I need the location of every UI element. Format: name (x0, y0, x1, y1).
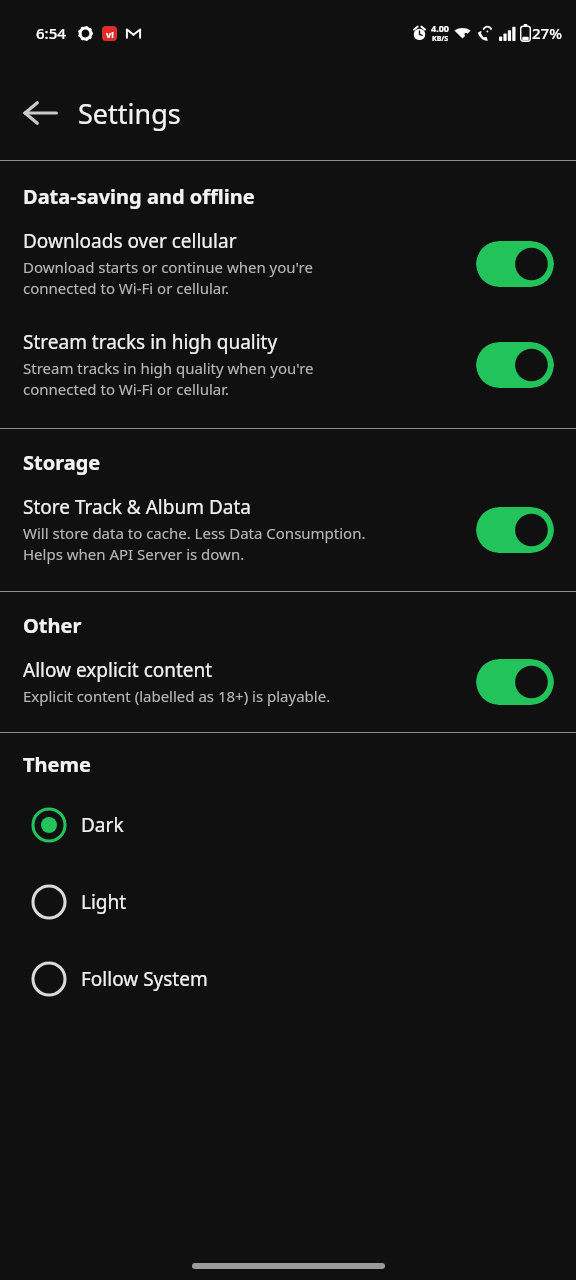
button[interactable]: Toggle (476, 507, 554, 553)
button[interactable]: Toggle (476, 659, 554, 705)
button[interactable]: Toggle (476, 342, 554, 388)
staticText: Other (23, 612, 82, 639)
staticText: Storage (23, 449, 101, 476)
staticText: 4.00 (431, 22, 449, 34)
button[interactable]: Dark (0, 786, 576, 863)
button[interactable]: Back (12, 85, 68, 141)
staticText: Download starts or continue when you're … (23, 257, 313, 299)
staticText: v! (106, 28, 114, 40)
staticText: 6:54 (36, 23, 66, 43)
staticText: Store Track & Album Data (23, 494, 251, 520)
button[interactable]: Follow System (0, 940, 576, 1017)
staticText: Data-saving and offline (23, 183, 255, 210)
button[interactable]: Stream tracks in high quality (0, 325, 576, 404)
staticText: KB/S (432, 34, 449, 44)
staticText: Dark (81, 812, 124, 838)
button[interactable]: Toggle (476, 241, 554, 287)
staticText: Light (81, 889, 127, 915)
staticText: Follow System (81, 966, 208, 992)
staticText: Settings (78, 95, 181, 132)
staticText: Stream tracks in high quality when you'r… (23, 358, 314, 400)
button[interactable]: Allow explicit content (0, 653, 576, 710)
staticText: Will store data to cache. Less Data Cons… (23, 523, 366, 565)
staticText: 27% (532, 23, 562, 43)
button[interactable]: Downloads over cellular (0, 224, 576, 303)
staticText: Downloads over cellular (23, 228, 237, 254)
staticText: Stream tracks in high quality (23, 329, 278, 355)
staticText: Theme (23, 751, 91, 778)
button[interactable]: Light (0, 863, 576, 940)
staticText: Explicit content (labelled as 18+) is pl… (23, 686, 331, 706)
button[interactable]: Store Track & Album Data (0, 490, 576, 569)
staticText: Allow explicit content (23, 657, 213, 683)
